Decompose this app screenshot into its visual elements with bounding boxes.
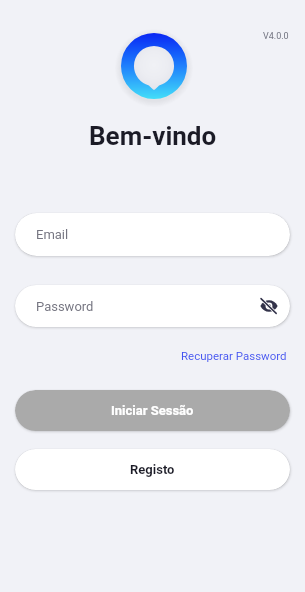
button[interactable]: Email	[15, 213, 290, 256]
staticText: Registo	[130, 462, 175, 477]
button[interactable]: Show password	[255, 292, 283, 320]
staticText: Recuperar Password	[181, 349, 287, 362]
staticText: V4.0.0	[263, 31, 289, 42]
button[interactable]: Password	[15, 285, 290, 327]
button[interactable]: Iniciar Sessão	[15, 390, 290, 431]
button[interactable]: Recuperar Password	[176, 344, 292, 367]
staticText: Email	[36, 227, 69, 242]
staticText: Iniciar Sessão	[111, 403, 194, 418]
button[interactable]: Registo	[15, 449, 290, 490]
staticText: Password	[36, 299, 94, 314]
staticText: Bem-vindo	[89, 121, 217, 151]
